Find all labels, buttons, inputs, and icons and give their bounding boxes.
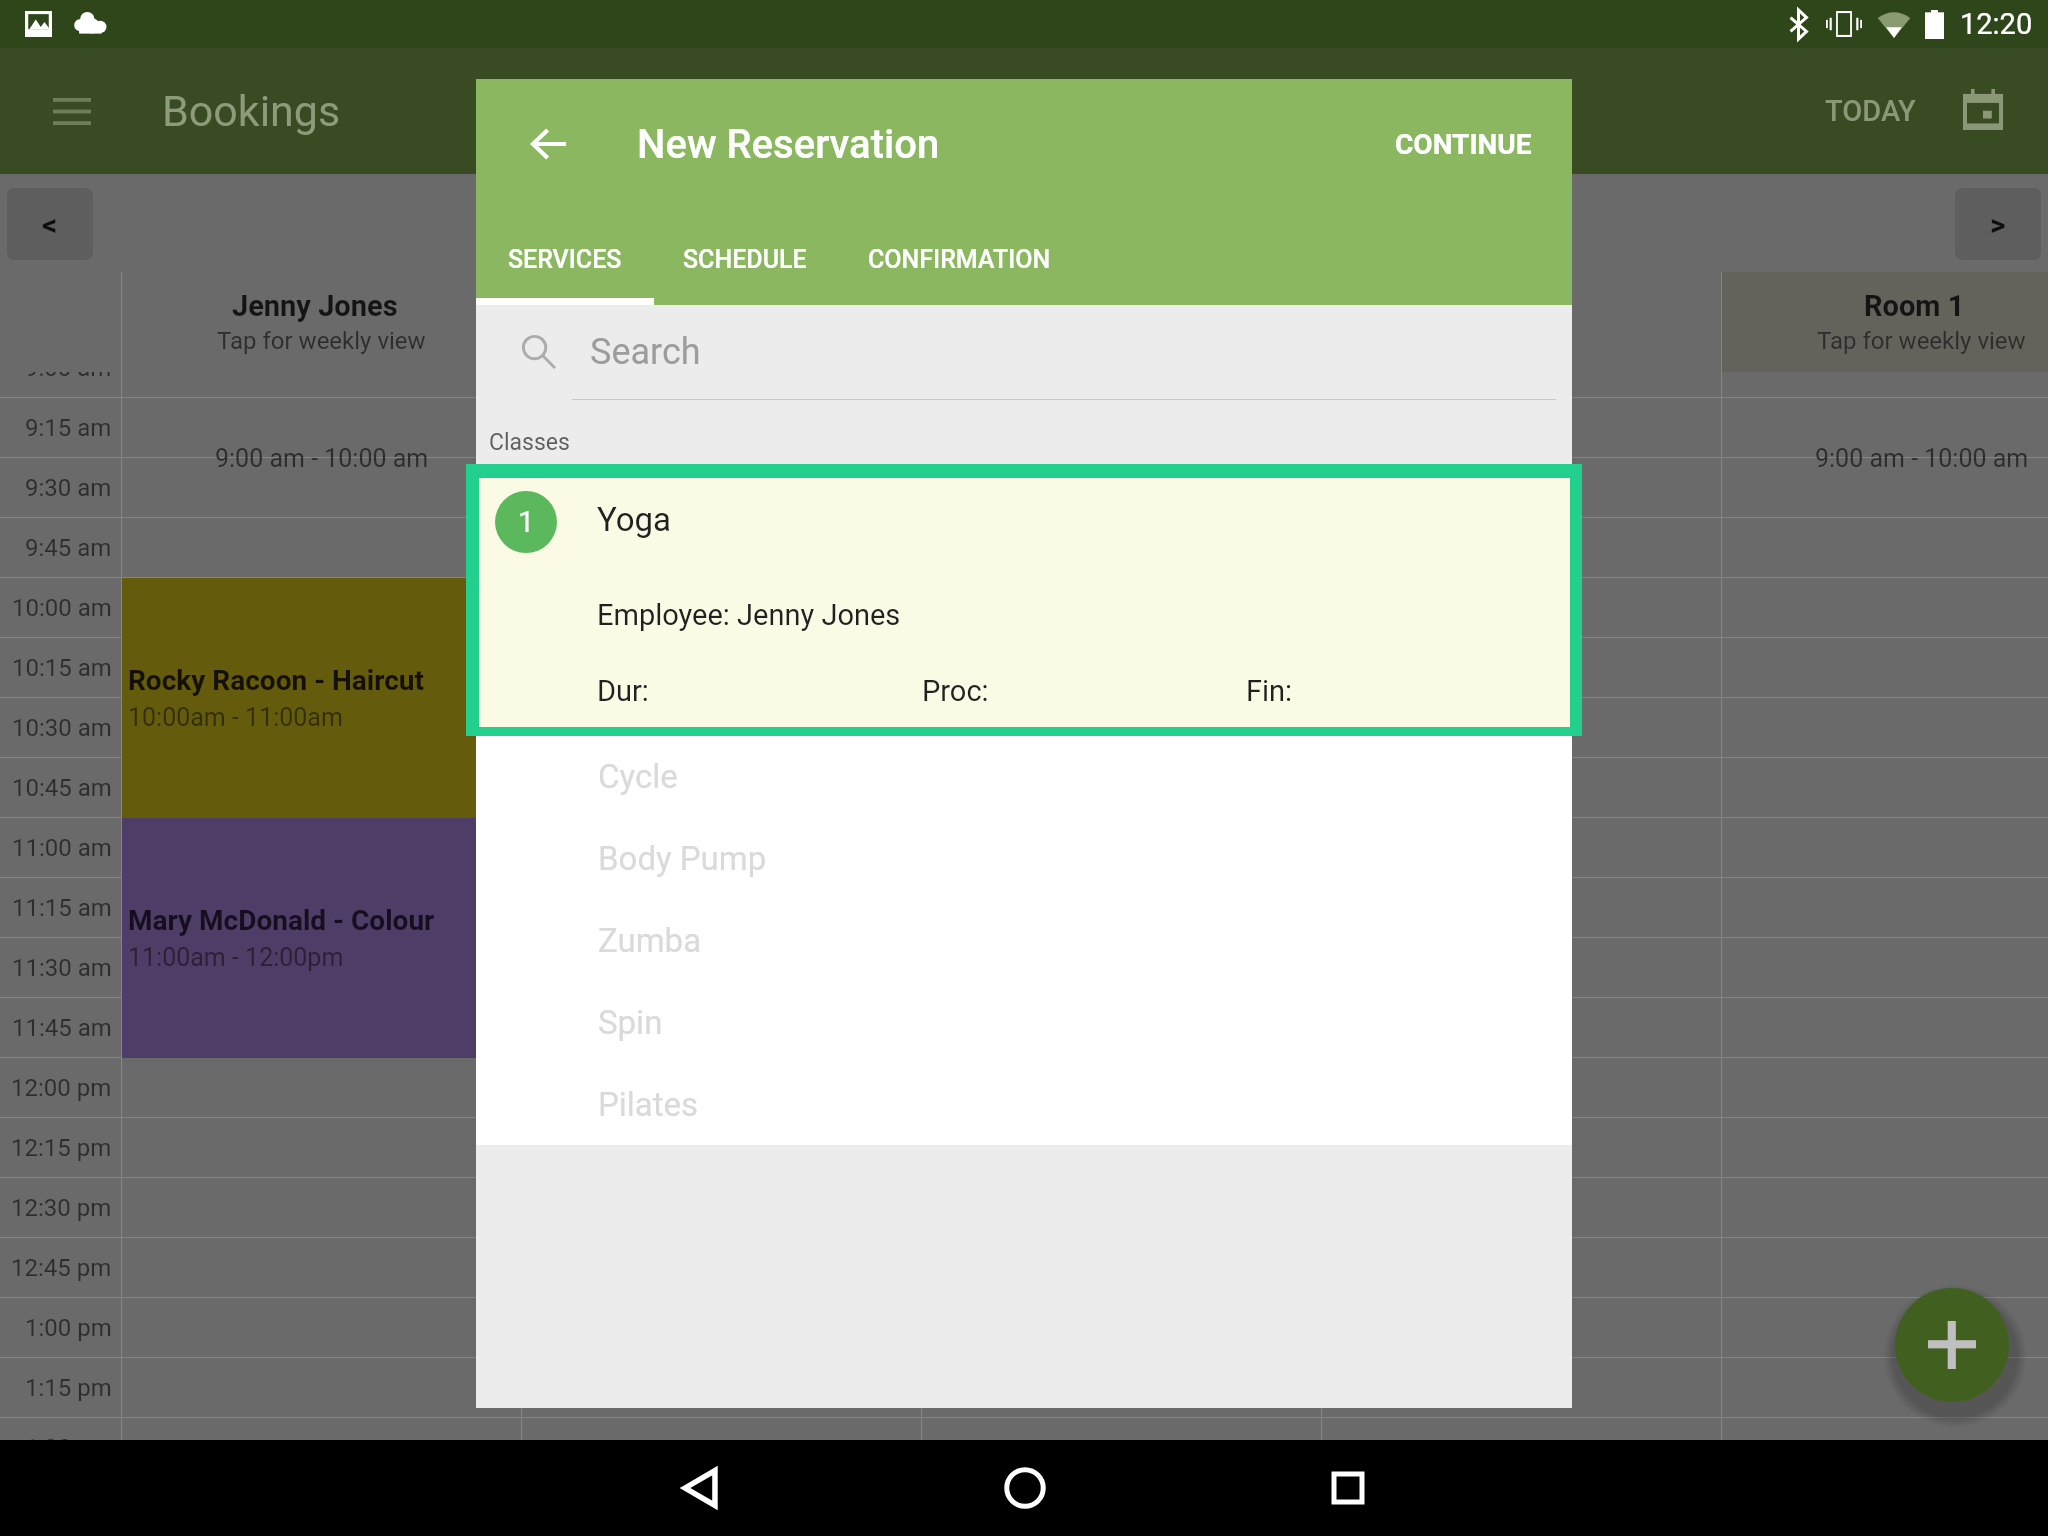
other: Search xyxy=(522,335,556,369)
staticText: 10:30 am xyxy=(12,714,112,742)
staticText: > xyxy=(1990,207,2006,242)
staticText: Classes xyxy=(489,429,570,456)
button[interactable]: Rocky Racoon - Haircut xyxy=(122,578,521,818)
button[interactable]: Pilates xyxy=(598,1063,1572,1145)
button[interactable]: Classes xyxy=(522,272,921,372)
button[interactable]: Room 1 xyxy=(1722,272,2048,372)
button[interactable]: CONFIRMATION xyxy=(835,219,1084,305)
button[interactable]: Recents xyxy=(1300,1440,1396,1536)
staticText: Proc: xyxy=(922,674,989,708)
staticText: Bookings xyxy=(162,86,341,136)
staticText: 11:00 am xyxy=(12,834,112,862)
staticText: 12:00 pm xyxy=(11,1074,112,1102)
staticText: 1:00 pm xyxy=(25,1314,112,1342)
staticText: 1:30 pm xyxy=(25,1434,112,1462)
staticText: < xyxy=(42,207,58,242)
button[interactable]: Jenny Jones xyxy=(122,272,521,372)
staticText: 11:30 am xyxy=(12,954,112,982)
staticText: Yoga xyxy=(597,500,672,539)
button[interactable]: Add booking xyxy=(1895,1288,2009,1402)
staticText: 12:15 pm xyxy=(11,1134,112,1162)
staticText: Zumba xyxy=(598,921,702,960)
staticText: 12:30 pm xyxy=(11,1194,112,1222)
staticText: 10:15 am xyxy=(12,654,112,682)
button[interactable]: Zumba xyxy=(598,899,1572,981)
staticText: Dur: xyxy=(597,674,649,708)
button[interactable]: TODAY xyxy=(1811,75,1930,147)
button[interactable]: Mary McDonald - Colour xyxy=(122,818,521,1058)
staticText: Body Pump xyxy=(598,839,767,878)
staticText: SCHEDULE xyxy=(683,245,807,274)
button[interactable]: CONTINUE xyxy=(1379,113,1548,175)
staticText: 9:30 am xyxy=(25,474,112,502)
staticText: CONTINUE xyxy=(1395,128,1532,161)
staticText: 11:15 am xyxy=(12,894,112,922)
button[interactable]: Back xyxy=(513,108,585,180)
staticText: 9:45 am xyxy=(25,534,112,562)
button[interactable]: SERVICES xyxy=(476,219,654,305)
button[interactable]: Previous xyxy=(7,188,93,260)
button[interactable]: 1 xyxy=(479,478,1570,727)
staticText: 12:20 xyxy=(1960,7,2033,41)
staticText: Tap for weekly view xyxy=(1817,327,2026,355)
button[interactable]: Back xyxy=(652,1440,748,1536)
staticText: Employee: Jenny Jones xyxy=(597,598,901,632)
staticText: 1 xyxy=(518,505,535,539)
button[interactable]: Body Pump xyxy=(598,817,1572,899)
button[interactable]: Next xyxy=(1955,188,2041,260)
staticText: 9:00 am - 10:00 am xyxy=(215,444,429,473)
staticText: 10:45 am xyxy=(12,774,112,802)
staticText: Rocky Racoon - Haircut xyxy=(128,664,424,697)
staticText: Classes xyxy=(663,289,766,323)
staticText: Spin xyxy=(598,1003,663,1042)
staticText: Cycle xyxy=(598,757,678,796)
staticText: CONFIRMATION xyxy=(868,245,1051,274)
staticText: 9:00 am - 10:00 am xyxy=(1815,444,2029,473)
staticText: 9:15 am xyxy=(25,414,112,442)
staticText: 12:45 pm xyxy=(11,1254,112,1282)
button[interactable]: Home xyxy=(977,1440,1073,1536)
staticText: Tap for weekly view xyxy=(217,327,426,355)
staticText: Room 1 xyxy=(1864,289,1965,323)
staticText: 9:00 am xyxy=(25,354,112,382)
staticText: SERVICES xyxy=(508,245,622,274)
staticText: 1:15 pm xyxy=(25,1374,112,1402)
button[interactable]: Cycle xyxy=(598,735,1572,817)
button[interactable]: SCHEDULE xyxy=(654,219,835,305)
staticText: 11:45 am xyxy=(12,1014,112,1042)
button[interactable]: Menu xyxy=(42,81,102,141)
staticText: Tap for weekly view xyxy=(617,327,826,355)
button[interactable]: Calendar xyxy=(1943,69,2023,149)
staticText: 11:00am - 12:00pm xyxy=(128,943,344,972)
staticText: Mary McDonald - Colour xyxy=(128,904,435,937)
staticText: Fin: xyxy=(1246,674,1293,708)
staticText: Search xyxy=(590,331,701,373)
staticText: New Reservation xyxy=(637,121,940,168)
staticText: Jenny Jones xyxy=(232,289,398,323)
staticText: 10:00 am xyxy=(12,594,112,622)
staticText: TODAY xyxy=(1825,94,1916,128)
staticText: 10:00am - 11:00am xyxy=(128,703,343,732)
staticText: Pilates xyxy=(598,1085,699,1124)
